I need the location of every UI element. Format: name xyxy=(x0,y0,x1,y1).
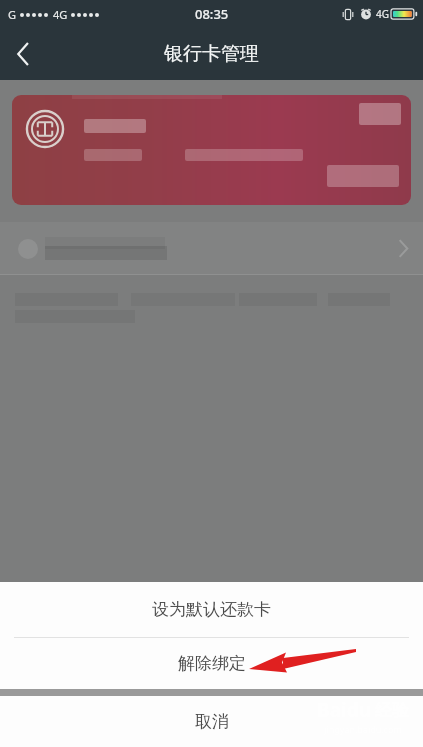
button[interactable]: 解除绑定 xyxy=(0,638,423,689)
staticText: G xyxy=(8,7,17,22)
staticText: 4G xyxy=(376,7,389,21)
staticText: 取消 xyxy=(195,711,229,732)
button[interactable] xyxy=(12,95,411,205)
button[interactable]: 返回 xyxy=(0,30,48,78)
button[interactable]: 设为默认还款卡 xyxy=(0,582,423,637)
staticText: 4G xyxy=(53,7,68,22)
staticText: 08:35 xyxy=(195,5,229,23)
button[interactable] xyxy=(0,222,423,275)
staticText: 解除绑定 xyxy=(178,653,246,674)
staticText: 设为默认还款卡 xyxy=(152,599,271,620)
button[interactable]: 取消 xyxy=(0,696,423,747)
staticText: 银行卡管理 xyxy=(164,42,259,66)
